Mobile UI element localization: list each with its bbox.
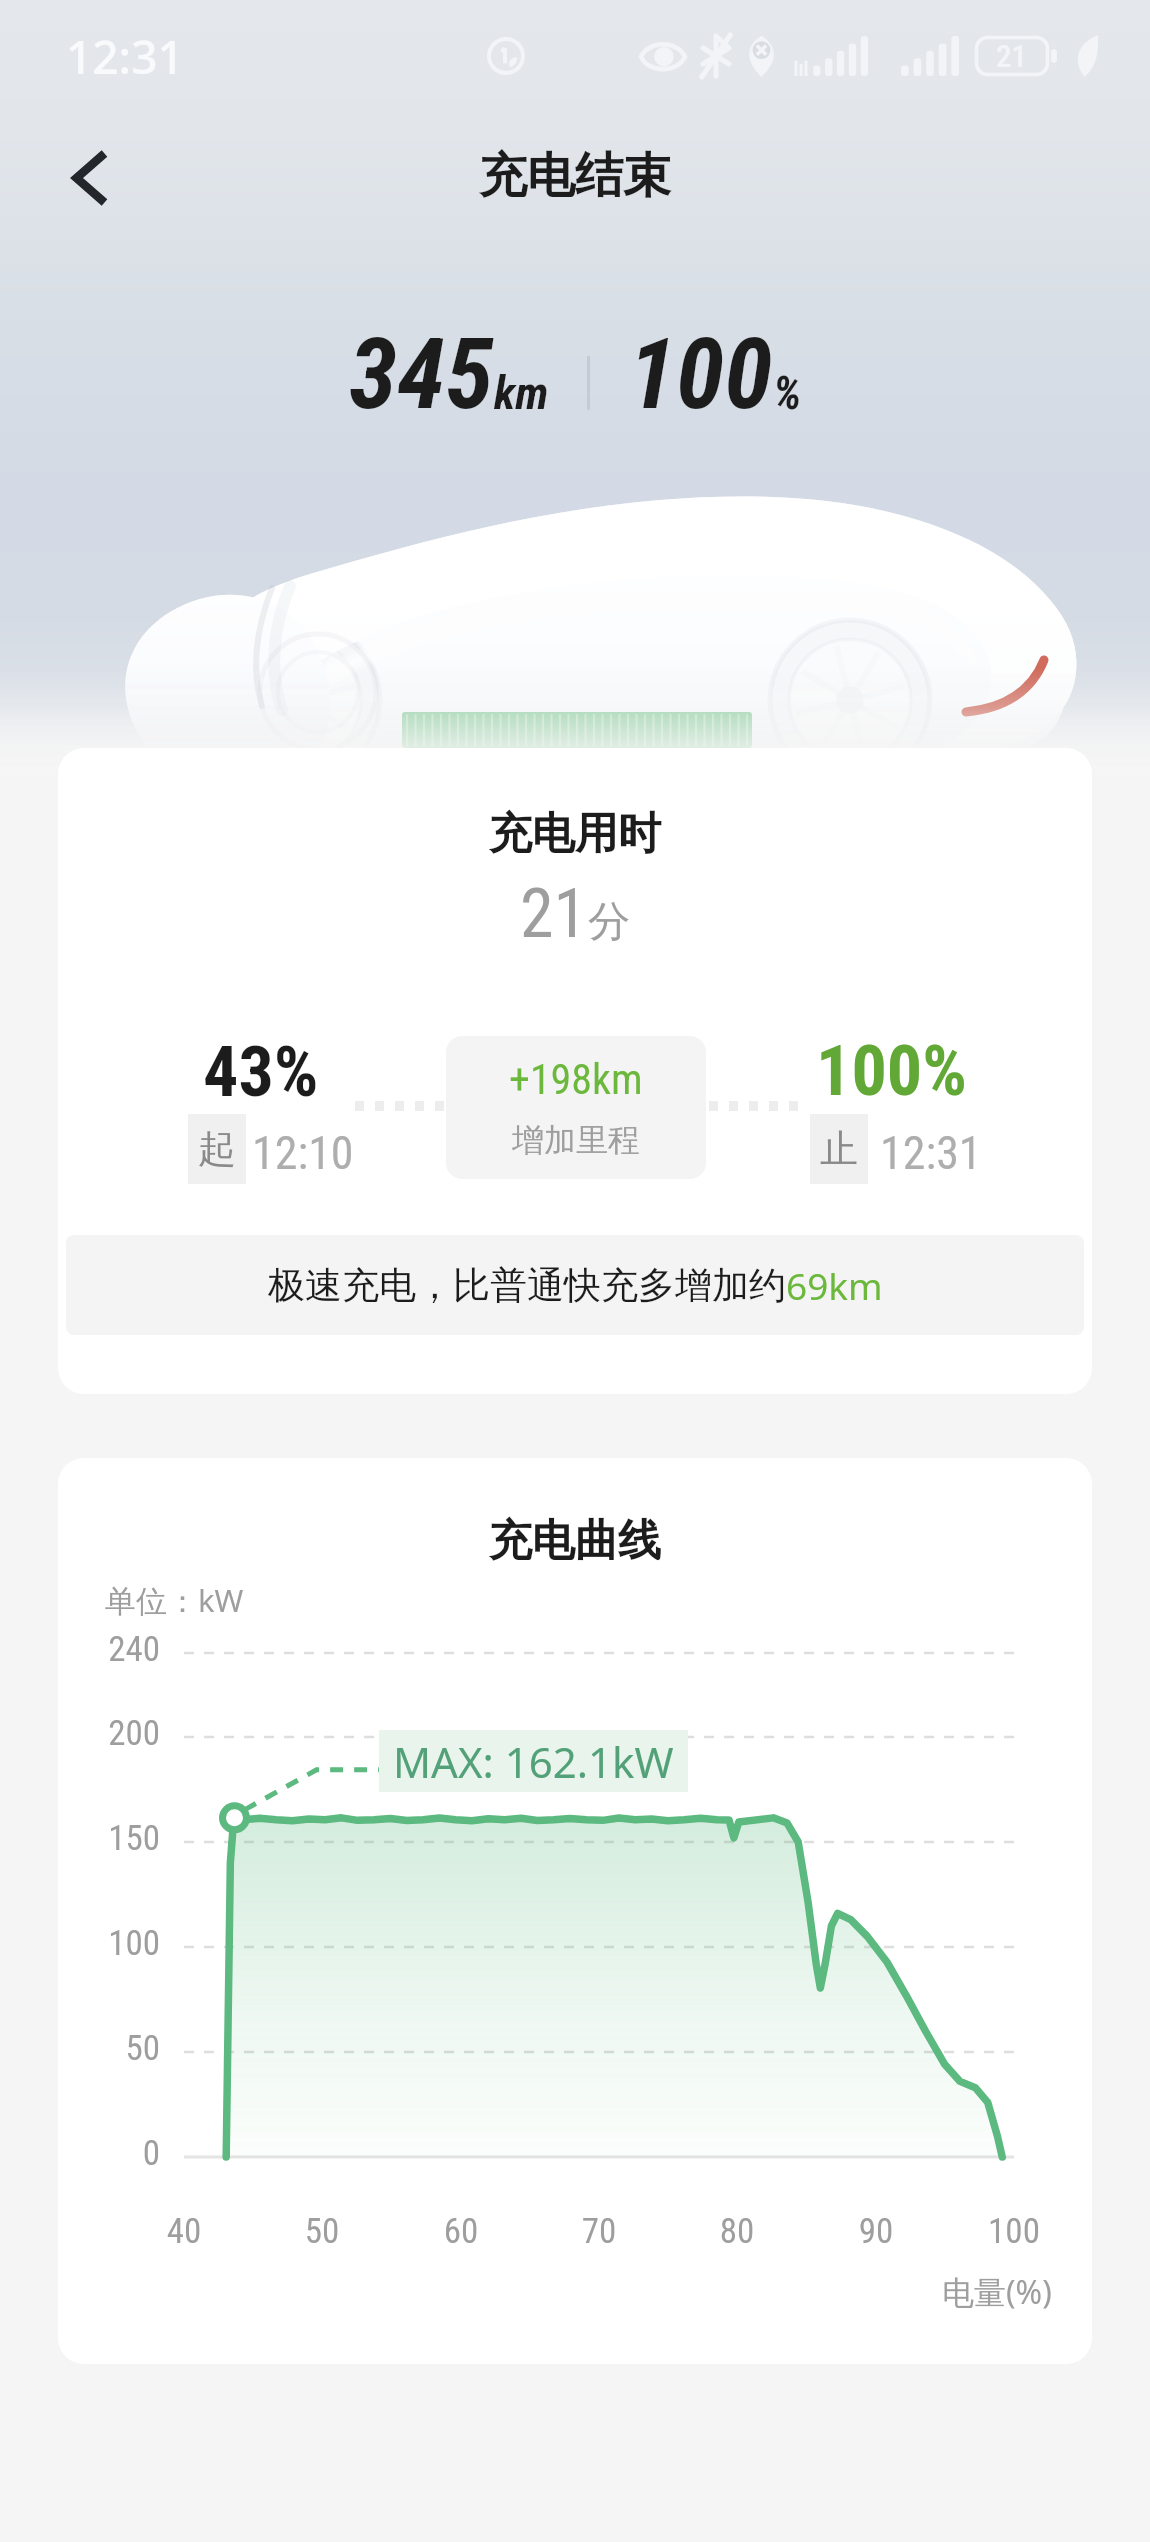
button[interactable]: Back <box>34 122 146 234</box>
staticText: 单位：kW <box>105 1579 244 1621</box>
staticText: 150 <box>58 1818 160 1859</box>
staticText: % <box>773 366 802 420</box>
staticText: 增加里程 <box>512 1120 640 1160</box>
staticText: 21 <box>996 38 1027 74</box>
staticText: 40 <box>124 2211 244 2252</box>
staticText: 43% <box>203 1031 319 1113</box>
staticText: 充电用时 <box>489 807 661 861</box>
staticText: 12:31 <box>880 1126 982 1180</box>
staticText: 100 <box>954 2211 1074 2252</box>
staticText: 50 <box>262 2211 382 2252</box>
staticText: +198km <box>509 1055 643 1104</box>
staticText: 止 <box>820 1125 858 1173</box>
staticText: 100% <box>816 1030 967 1112</box>
staticText: 分 <box>588 896 630 949</box>
staticText: 240 <box>58 1629 160 1670</box>
staticText: 60 <box>401 2211 521 2252</box>
staticText: 69km <box>786 1260 883 1310</box>
staticText: 100 <box>58 1923 160 1964</box>
staticText: 12:31 <box>66 25 184 88</box>
staticText: 50 <box>58 2028 160 2069</box>
staticText: 21 <box>520 874 588 954</box>
staticText: MAX: 162.1kW <box>393 1733 674 1790</box>
staticText: 充电结束 <box>479 146 671 206</box>
staticText: 起 <box>198 1125 236 1173</box>
button[interactable]: +198km <box>446 1036 706 1179</box>
staticText: 100 <box>628 317 773 432</box>
staticText: 电量(%) <box>942 2270 1052 2314</box>
staticText: 200 <box>58 1713 160 1754</box>
staticText: 极速充电，比普通快充多增加约 <box>268 1262 786 1309</box>
staticText: 12:10 <box>252 1126 354 1180</box>
button[interactable]: 充电用时 <box>58 748 1092 1394</box>
staticText: 80 <box>677 2211 797 2252</box>
staticText: 70 <box>539 2211 659 2252</box>
staticText: 90 <box>816 2211 936 2252</box>
staticText: 充电曲线 <box>489 1514 661 1568</box>
button[interactable]: 极速充电，比普通快充多增加约 <box>66 1235 1084 1335</box>
staticText: km <box>494 366 549 420</box>
staticText: 345 <box>349 317 494 432</box>
staticText: 0 <box>58 2133 160 2174</box>
button[interactable]: 充电曲线 <box>58 1458 1092 2364</box>
